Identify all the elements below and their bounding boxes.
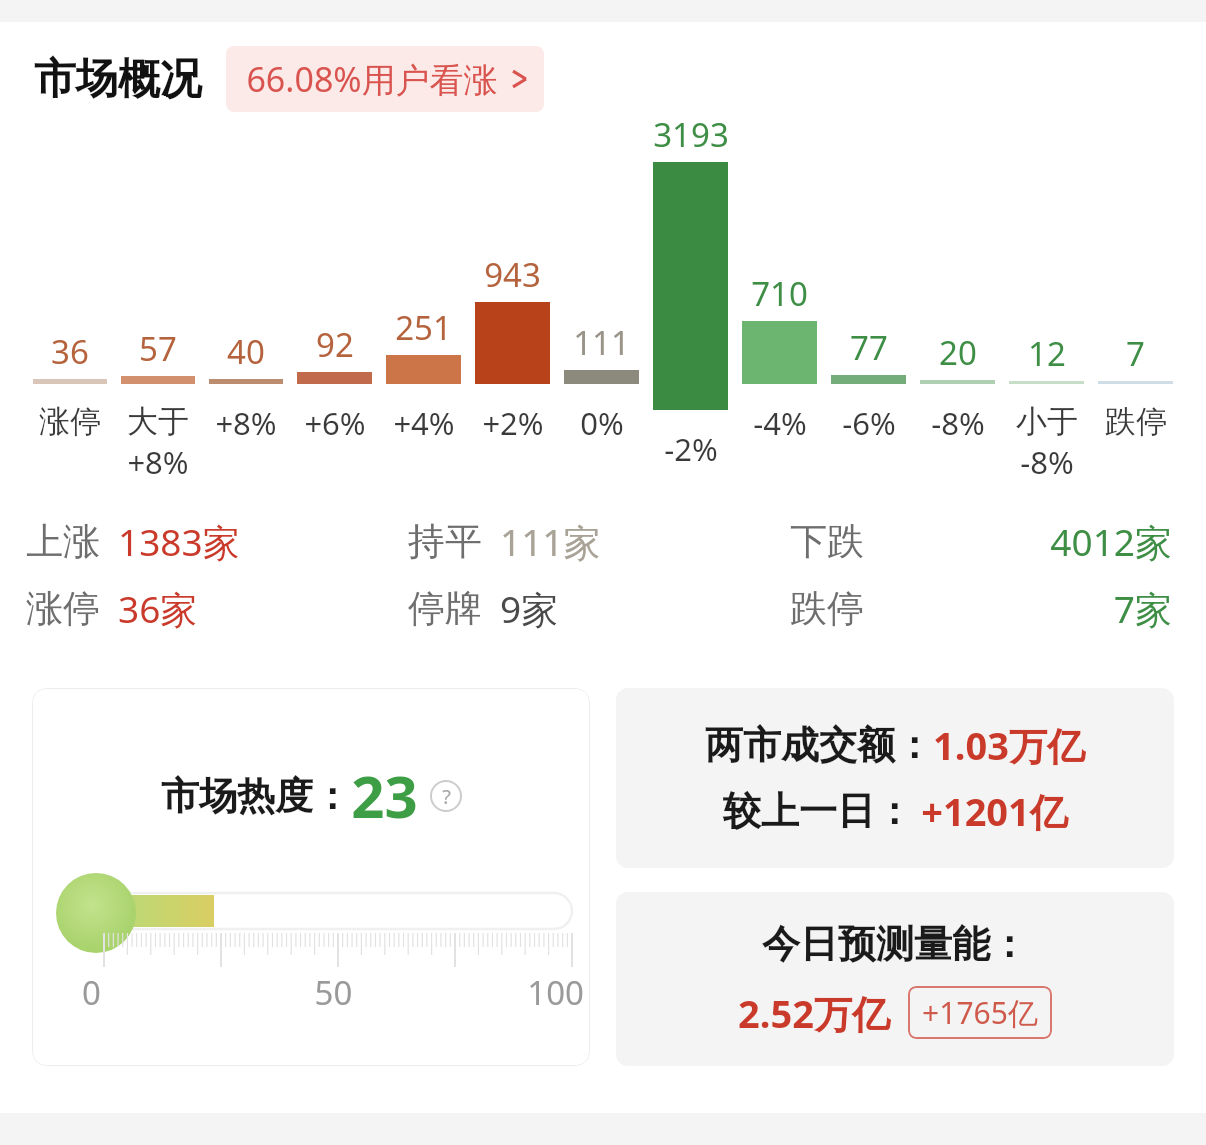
staticText: 251 <box>395 305 452 350</box>
staticText: 跌停 <box>790 585 864 632</box>
button[interactable]: 251 <box>379 112 468 444</box>
staticText: 50 <box>250 970 417 1015</box>
button[interactable]: 66.08%用户看涨 <box>226 46 544 112</box>
staticText: -4% <box>753 402 807 444</box>
staticText: -2% <box>664 428 718 470</box>
button[interactable]: 111 <box>557 112 646 444</box>
staticText: 12 <box>1028 331 1066 376</box>
staticText: 0% <box>580 402 624 444</box>
button[interactable]: 57 <box>114 112 202 483</box>
button[interactable]: 两市成交额： <box>616 688 1174 868</box>
staticText: 2.52万亿 <box>738 987 890 1039</box>
button[interactable]: 20 <box>913 112 1002 444</box>
staticText: -6% <box>842 402 896 444</box>
staticText: 710 <box>751 271 808 316</box>
staticText: 4012家 <box>1050 516 1172 567</box>
button[interactable]: 12 <box>1002 112 1091 483</box>
staticText: 36 <box>51 329 89 374</box>
staticText: 40 <box>227 329 265 374</box>
staticText: 市场概况 <box>34 53 202 106</box>
staticText: 23 <box>351 756 418 835</box>
button[interactable]: 92 <box>290 112 379 444</box>
staticText: 两市成交额： <box>705 721 933 769</box>
staticText: 100 <box>417 970 584 1015</box>
staticText: 小于 <box>1016 402 1078 441</box>
staticText: +8% <box>215 402 277 444</box>
staticText: 20 <box>939 330 977 375</box>
button[interactable]: 36 <box>26 112 114 441</box>
staticText: 跌停 <box>1105 402 1167 441</box>
staticText: 66.08%用户看涨 <box>246 56 498 102</box>
staticText: 持平 <box>408 518 482 565</box>
staticText: 市场热度： <box>161 772 351 820</box>
staticText: 上涨 <box>26 518 100 565</box>
button[interactable]: 710 <box>735 112 824 444</box>
staticText: 停牌 <box>408 585 482 632</box>
staticText: 7家 <box>1113 583 1172 634</box>
button[interactable]: 7 <box>1091 112 1180 441</box>
staticText: 大于 <box>127 402 189 441</box>
button[interactable]: 3193 <box>646 112 735 470</box>
button[interactable]: 943 <box>468 112 557 444</box>
staticText: 943 <box>484 252 541 297</box>
button[interactable]: 40 <box>202 112 290 444</box>
staticText: 36家 <box>118 583 198 634</box>
staticText: -8% <box>1020 441 1074 483</box>
staticText: 1383家 <box>118 516 240 567</box>
staticText: 涨停 <box>39 402 101 441</box>
staticText: 111 <box>573 320 630 365</box>
button[interactable]: 77 <box>824 112 913 444</box>
staticText: +4% <box>393 402 455 444</box>
staticText: 111家 <box>500 516 601 567</box>
staticText: 0 <box>82 970 250 1015</box>
staticText: 3193 <box>653 112 729 157</box>
staticText: +6% <box>304 402 366 444</box>
staticText: 57 <box>139 326 177 371</box>
staticText: 77 <box>850 325 888 370</box>
staticText: ? <box>442 783 451 810</box>
staticText: +1201亿 <box>921 785 1068 837</box>
staticText: 涨停 <box>26 585 100 632</box>
staticText: 今日预测量能： <box>762 920 1028 968</box>
staticText: 7 <box>1126 331 1145 376</box>
staticText: 下跌 <box>790 518 864 565</box>
staticText: 9家 <box>500 583 559 634</box>
staticText: 较上一日： <box>723 787 913 835</box>
button[interactable]: 今日预测量能： <box>616 892 1174 1066</box>
staticText: -8% <box>931 402 985 444</box>
staticText: +1765亿 <box>922 992 1038 1033</box>
button[interactable]: 市场热度： <box>32 688 590 1066</box>
staticText: +8% <box>127 441 189 483</box>
staticText: 1.03万亿 <box>933 719 1085 771</box>
staticText: 92 <box>316 322 354 367</box>
staticText: +2% <box>482 402 544 444</box>
button[interactable]: 热度说明 <box>430 780 462 812</box>
